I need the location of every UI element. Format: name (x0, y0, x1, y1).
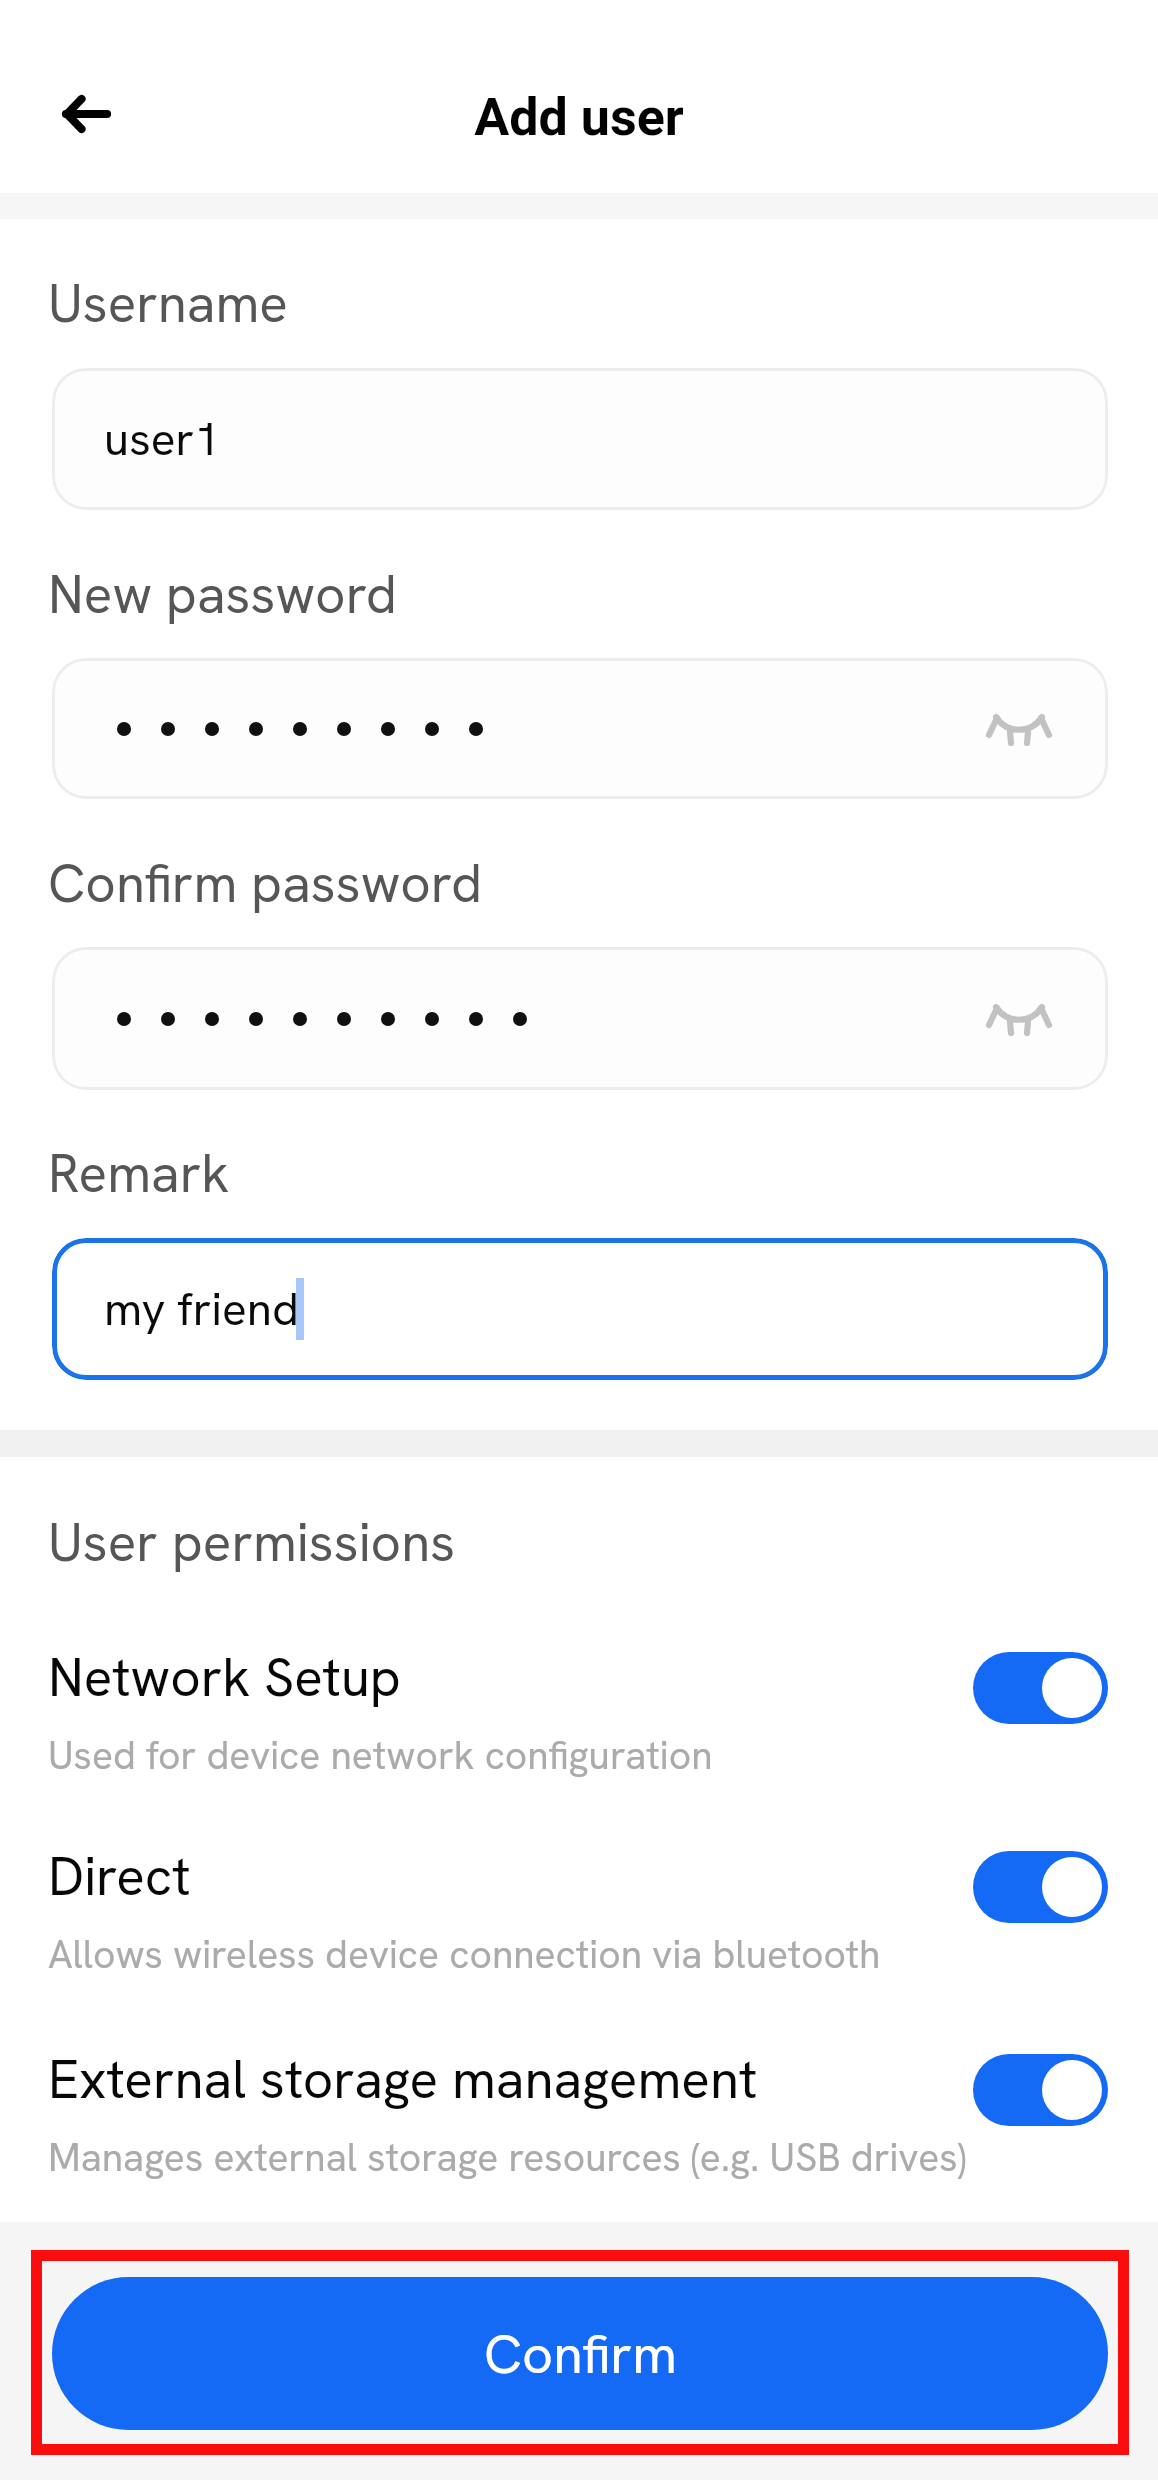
staticText: New password (48, 560, 397, 629)
button[interactable]: Toggle (973, 1652, 1108, 1724)
staticText: Allows wireless device connection via bl… (48, 1929, 881, 1980)
staticText: External storage management (48, 2045, 758, 2114)
staticText: Confirm (484, 2319, 677, 2389)
button[interactable]: Confirm (52, 2277, 1108, 2430)
staticText: Confirm password (48, 849, 483, 918)
staticText: Manages external storage resources (e.g.… (48, 2132, 967, 2183)
button[interactable]: Toggle (973, 1851, 1108, 1923)
staticText: Remark (48, 1139, 230, 1208)
button[interactable]: Direct (48, 1842, 1108, 2022)
button[interactable]: user1 (52, 368, 1108, 510)
button[interactable]: Show password (52, 658, 1108, 799)
staticText: User permissions (48, 1508, 456, 1577)
button[interactable]: Toggle (973, 2054, 1108, 2126)
button[interactable]: my friend (52, 1238, 1108, 1380)
button[interactable]: Show password (971, 971, 1067, 1067)
button[interactable]: Show password (52, 947, 1108, 1090)
staticText: my friend (104, 1279, 299, 1339)
staticText: Add user (0, 87, 1158, 148)
staticText: Username (48, 269, 288, 338)
staticText: Direct (48, 1842, 191, 1911)
staticText: Used for device network configuration (48, 1730, 713, 1781)
button[interactable]: External storage management (48, 2045, 1108, 2225)
button[interactable]: Network Setup (48, 1643, 1108, 1823)
staticText: user1 (104, 409, 221, 469)
button[interactable]: Back (38, 66, 134, 162)
button[interactable]: Show password (971, 681, 1067, 777)
staticText: Network Setup (48, 1643, 401, 1712)
